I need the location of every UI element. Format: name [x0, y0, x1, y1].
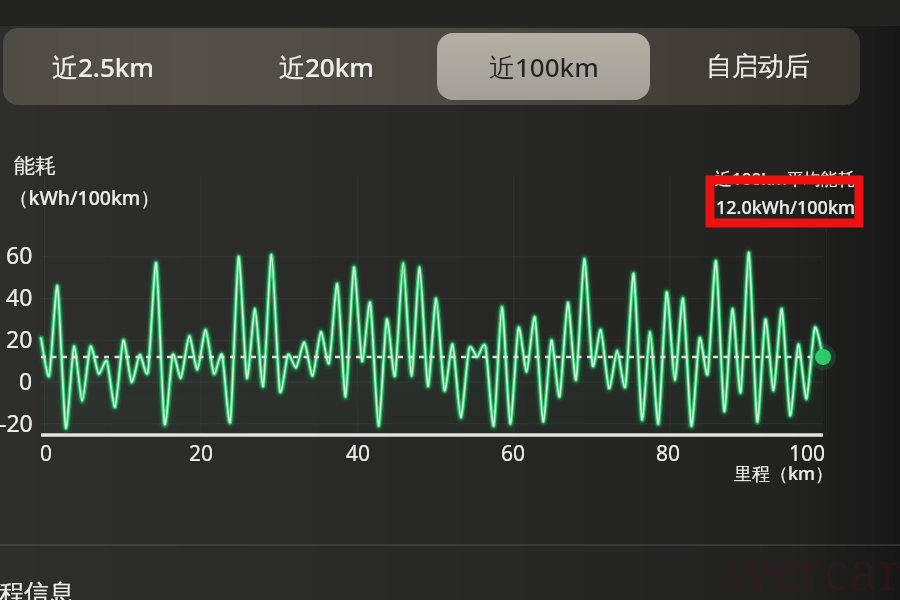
staticText: 60	[501, 439, 526, 468]
staticText: -20	[0, 407, 33, 438]
staticText: （kWh/100km）	[9, 184, 160, 211]
button[interactable]: 自启动后	[650, 28, 865, 105]
staticText: wercar	[726, 534, 900, 600]
button[interactable]: 近100km	[437, 28, 650, 105]
button[interactable]: 近100km能耗曲线	[0, 0, 900, 600]
staticText: 自启动后	[706, 50, 810, 83]
staticText: 20	[189, 439, 214, 468]
staticText: 80	[656, 439, 681, 468]
staticText: 近20km	[279, 49, 374, 85]
staticText: 近2.5km	[52, 49, 154, 85]
staticText: 近100km	[489, 49, 599, 85]
staticText: 0	[19, 365, 33, 396]
staticText: 能耗	[14, 153, 56, 179]
staticText: 里程信息	[0, 578, 74, 600]
staticText: 40	[6, 281, 33, 312]
staticText: 40	[346, 439, 371, 468]
staticText: 0	[40, 439, 53, 468]
staticText: 近100km平均能耗	[715, 167, 855, 190]
button[interactable]: 近20km	[203, 28, 449, 105]
staticText: 里程（km）	[734, 461, 834, 486]
button[interactable]: 里程信息	[0, 546, 420, 600]
staticText: 20	[6, 323, 33, 354]
staticText: 100	[789, 439, 826, 468]
button[interactable]: 近2.5km	[3, 28, 203, 105]
staticText: 60	[6, 239, 33, 270]
staticText: 12.0kWh/100km	[716, 195, 855, 220]
